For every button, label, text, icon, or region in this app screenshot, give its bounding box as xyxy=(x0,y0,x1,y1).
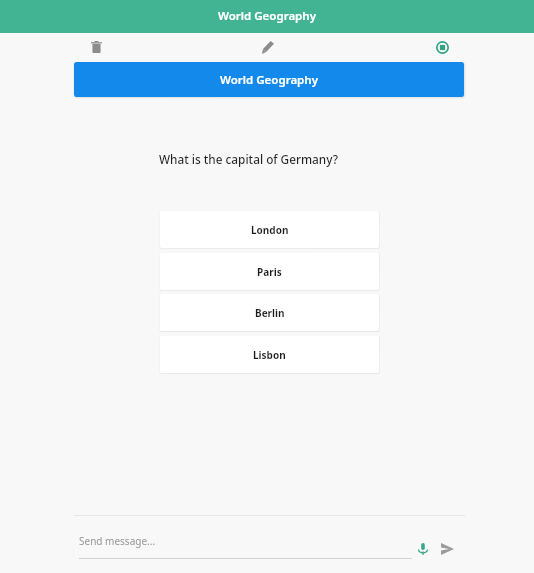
button[interactable]: Send xyxy=(436,537,459,560)
button[interactable]: London xyxy=(160,211,379,248)
staticText: Send message... xyxy=(79,534,156,548)
button[interactable]: World Geography xyxy=(74,62,464,97)
staticText: Berlin xyxy=(255,306,285,320)
staticText: London xyxy=(251,223,289,237)
staticText: World Geography xyxy=(218,8,316,24)
button[interactable]: Lisbon xyxy=(160,336,379,373)
staticText: Paris xyxy=(257,265,282,279)
button[interactable]: Paris xyxy=(160,253,379,290)
button[interactable]: Stop xyxy=(428,33,456,61)
button[interactable]: Voice input xyxy=(411,537,434,560)
staticText: Lisbon xyxy=(253,348,286,362)
button[interactable]: Delete xyxy=(82,33,110,61)
button[interactable]: Edit xyxy=(254,33,282,61)
button[interactable]: Berlin xyxy=(160,294,379,331)
staticText: World Geography xyxy=(220,72,318,88)
staticText: What is the capital of Germany? xyxy=(159,151,339,167)
